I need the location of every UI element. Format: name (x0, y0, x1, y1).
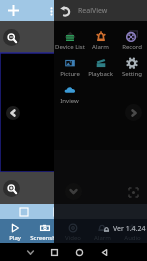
button[interactable]: Record (116, 30, 147, 57)
staticText: Ver 1.4.24 (113, 224, 146, 234)
button[interactable]: Picture (54, 57, 85, 84)
button[interactable]: Zoom in (3, 180, 20, 197)
button[interactable]: Hide keyboard (22, 244, 38, 260)
button[interactable]: Next (125, 104, 142, 121)
button[interactable]: Zoom out (3, 29, 20, 46)
button[interactable]: Setting (116, 57, 147, 84)
staticText: Audio (124, 234, 141, 242)
staticText: Device List (55, 43, 85, 51)
button[interactable]: Four view (51, 205, 65, 219)
staticText: Playback (88, 70, 113, 78)
button[interactable]: Back (96, 244, 112, 260)
staticText: RealView (78, 6, 108, 16)
staticText: Video (67, 234, 83, 242)
button[interactable]: Video (60, 219, 89, 243)
staticText: Video (65, 234, 81, 242)
button[interactable]: Play (0, 219, 30, 243)
button[interactable]: Collapse (65, 183, 82, 200)
button[interactable]: Device List (54, 30, 85, 57)
staticText: Alarm (95, 234, 112, 242)
button[interactable]: More options (44, 4, 58, 18)
button[interactable]: Recents (46, 244, 62, 260)
button[interactable]: Playback (85, 57, 116, 84)
staticText: Inview (60, 97, 79, 105)
button[interactable]: Alarm (89, 219, 118, 243)
button[interactable]: Audio (118, 219, 147, 243)
button[interactable]: Focus (125, 184, 141, 200)
button[interactable]: Single view (17, 205, 31, 219)
button[interactable]: Alarm (85, 30, 116, 57)
staticText: Alarm (92, 43, 109, 51)
button[interactable]: Screenshot (30, 219, 60, 243)
staticText: Alarm (94, 234, 111, 242)
staticText: Picture (60, 70, 80, 78)
button[interactable]: Add (4, 1, 23, 20)
button[interactable]: Back (57, 3, 73, 19)
staticText: Setting (122, 70, 142, 78)
button[interactable]: Previous (6, 106, 20, 120)
staticText: Audio (124, 234, 141, 242)
staticText: Screenshot (30, 234, 60, 242)
staticText: Play (9, 234, 21, 242)
button[interactable]: Inview (54, 84, 85, 111)
button[interactable]: Home (71, 244, 87, 260)
staticText: Record (122, 43, 142, 51)
